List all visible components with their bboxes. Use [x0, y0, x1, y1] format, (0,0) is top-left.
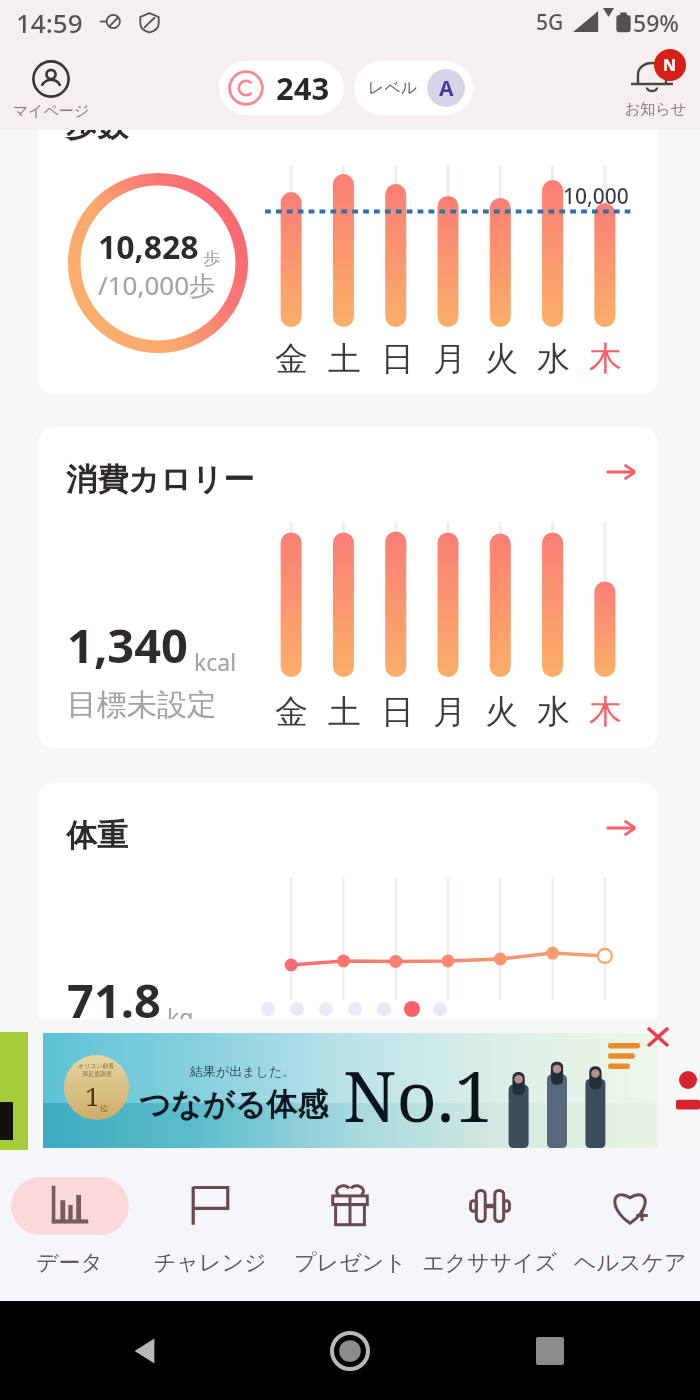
staticText: 土	[328, 338, 361, 380]
button[interactable]: プレゼント	[280, 1153, 420, 1301]
staticText: 金	[275, 691, 308, 733]
staticText: No.1	[343, 1047, 494, 1142]
button[interactable]: マイページ	[12, 52, 90, 122]
staticText: 消費カロリー	[66, 460, 255, 499]
button[interactable]: 詳細	[603, 810, 639, 846]
staticText: お知らせ	[625, 100, 687, 119]
button[interactable]: 体重	[38, 783, 658, 1083]
staticText: 体重	[66, 816, 128, 855]
staticText: kg	[161, 1001, 194, 1032]
button[interactable]: データ	[0, 1153, 140, 1301]
button[interactable]: 歩数	[38, 94, 658, 394]
button[interactable]: エクササイズ	[420, 1153, 560, 1301]
staticText: 14:59	[16, 5, 83, 40]
staticText: 1	[85, 1078, 100, 1113]
staticText: 結果が出ました。	[190, 1063, 296, 1079]
button[interactable]: 戻る	[131, 1336, 161, 1366]
button[interactable]: 243	[219, 61, 344, 115]
staticText: 位	[100, 1103, 108, 1113]
staticText: 59%	[633, 7, 679, 38]
staticText: エクササイズ	[422, 1249, 558, 1277]
staticText: オリコン顧客	[78, 1062, 115, 1070]
button[interactable]: 履歴	[536, 1337, 564, 1365]
staticText: A	[439, 74, 454, 103]
button[interactable]: お知らせ	[615, 50, 693, 124]
button[interactable]: 閉じる	[646, 1026, 670, 1048]
staticText: 71.8	[67, 968, 161, 1032]
staticText: ヘルスケア	[574, 1249, 687, 1277]
staticText: 10,828	[98, 225, 199, 269]
staticText: つながる体感	[139, 1085, 328, 1124]
staticText: 火	[485, 691, 518, 733]
button[interactable]: ホーム	[330, 1331, 370, 1371]
staticText: 1,340	[67, 613, 188, 677]
staticText: プレゼント	[294, 1249, 407, 1277]
staticText: /10,000歩	[98, 267, 216, 303]
button[interactable]: ヘルスケア	[560, 1153, 700, 1301]
button[interactable]: チャレンジ	[140, 1153, 280, 1301]
staticText: レベル	[368, 78, 418, 98]
staticText: チャレンジ	[154, 1249, 267, 1277]
button[interactable]: 消費カロリー	[38, 427, 658, 748]
staticText: 土	[328, 691, 361, 733]
staticText: 5G	[536, 8, 564, 37]
staticText: 木	[589, 338, 622, 380]
staticText: 歩	[199, 246, 221, 269]
staticText: 月	[433, 338, 466, 380]
staticText: N	[663, 54, 677, 76]
staticText: 水	[537, 691, 570, 733]
staticText: 日	[381, 338, 414, 380]
staticText: 目標未設定	[67, 686, 217, 724]
staticText: 水	[537, 338, 570, 380]
other: マイページ	[32, 60, 70, 98]
staticText: 金	[275, 338, 308, 380]
other: お知らせ	[627, 54, 677, 104]
button[interactable]: 詳細	[603, 454, 639, 490]
button[interactable]: レベル	[354, 61, 473, 115]
staticText: マイページ	[13, 102, 90, 121]
staticText: kcal	[188, 646, 237, 677]
button[interactable]: オリコン顧客	[43, 1033, 658, 1148]
staticText: 243	[276, 67, 330, 109]
staticText: 歩数	[66, 106, 128, 145]
staticText: 満足度調査	[82, 1070, 112, 1078]
staticText: 月	[433, 691, 466, 733]
staticText: 木	[589, 691, 622, 733]
staticText: 日	[381, 691, 414, 733]
staticText: 10,000	[563, 182, 629, 211]
staticText: データ	[36, 1249, 104, 1277]
staticText: 火	[485, 338, 518, 380]
